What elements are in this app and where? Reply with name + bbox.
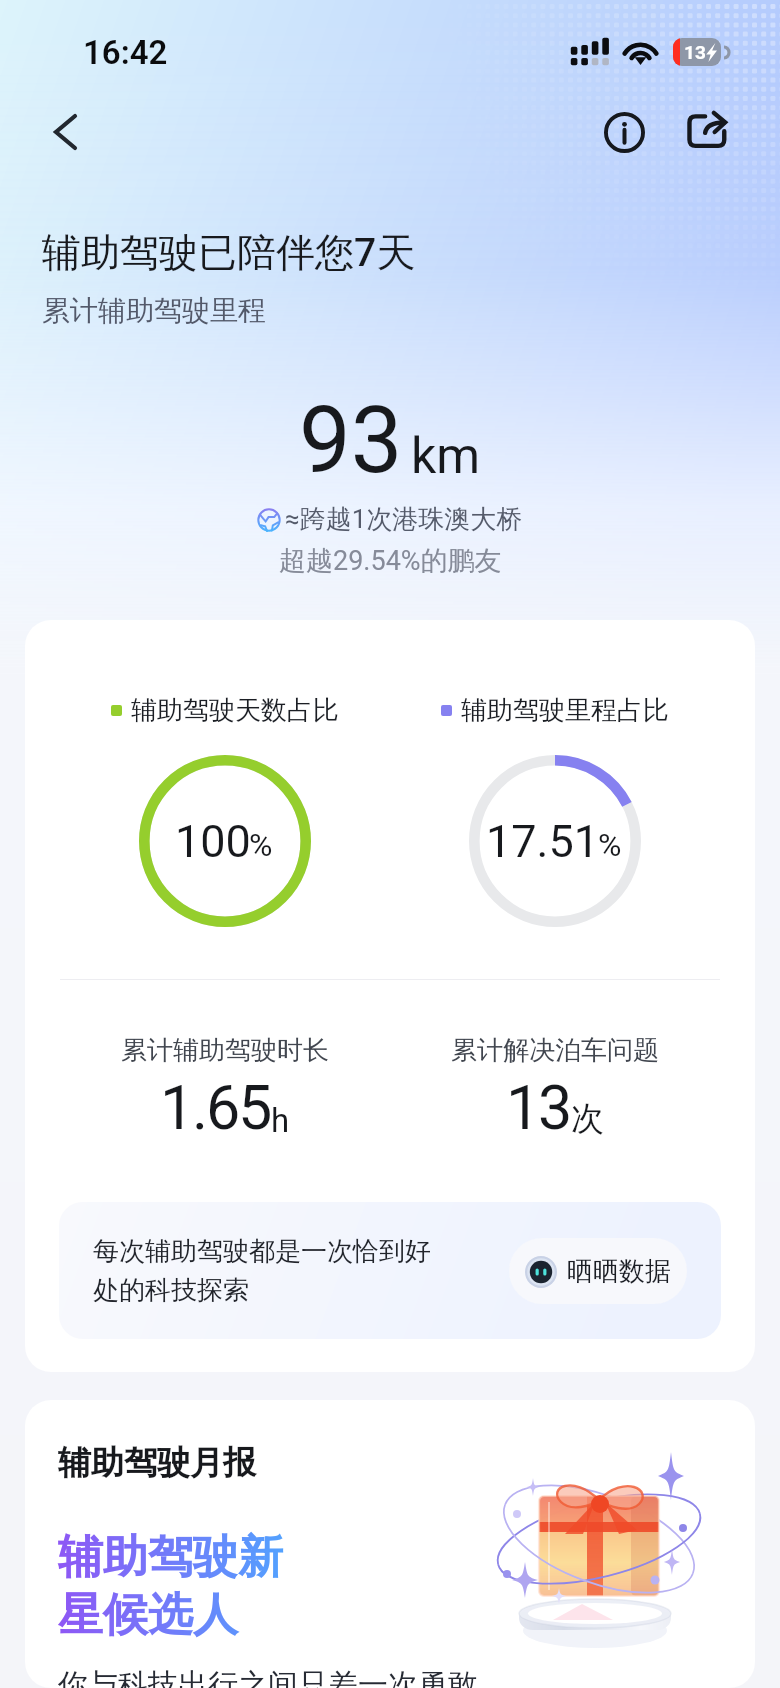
button[interactable]: Back xyxy=(32,99,98,165)
staticText: 辅助驾驶月报 xyxy=(58,1442,256,1484)
staticText: 累计辅助驾驶里程 xyxy=(42,293,266,328)
staticText: 辅助驾驶天数占比 xyxy=(131,694,339,727)
staticText: 累计解决泊车问题 xyxy=(451,1034,659,1067)
staticText: 1.65 xyxy=(160,1072,271,1143)
staticText: 13 xyxy=(684,41,706,63)
staticText: 93 xyxy=(299,387,403,495)
staticText: 晒晒数据 xyxy=(567,1255,671,1288)
staticText: 每次辅助驾驶都是一次恰到好 处的科技探索 xyxy=(93,1235,509,1307)
staticText: 星候选人 xyxy=(58,1587,238,1644)
staticText: 辅助驾驶新 xyxy=(58,1529,283,1586)
staticText: 你与科技出行之间只差一次勇敢 xyxy=(58,1666,478,1688)
staticText: 辅助驾驶已陪伴您7天 xyxy=(42,228,416,277)
staticText: 次 xyxy=(571,1098,604,1140)
staticText: % xyxy=(249,826,273,864)
staticText: 辅助驾驶里程占比 xyxy=(461,694,669,727)
button[interactable]: Share xyxy=(673,99,739,165)
staticText: h xyxy=(271,1101,290,1140)
staticText: ≈跨越1次港珠澳大桥 xyxy=(285,503,523,536)
staticText: 16:42 xyxy=(83,33,168,72)
button[interactable]: 晒晒数据 xyxy=(509,1238,687,1304)
button[interactable]: Info xyxy=(591,99,657,165)
staticText: 13 xyxy=(506,1072,571,1143)
staticText: km xyxy=(411,427,481,486)
staticText: 17.51 xyxy=(486,815,600,868)
staticText: % xyxy=(598,826,622,864)
staticText: 100 xyxy=(175,815,251,868)
staticText: 累计辅助驾驶时长 xyxy=(121,1034,329,1067)
staticText: 超越29.54%的鹏友 xyxy=(279,544,502,578)
